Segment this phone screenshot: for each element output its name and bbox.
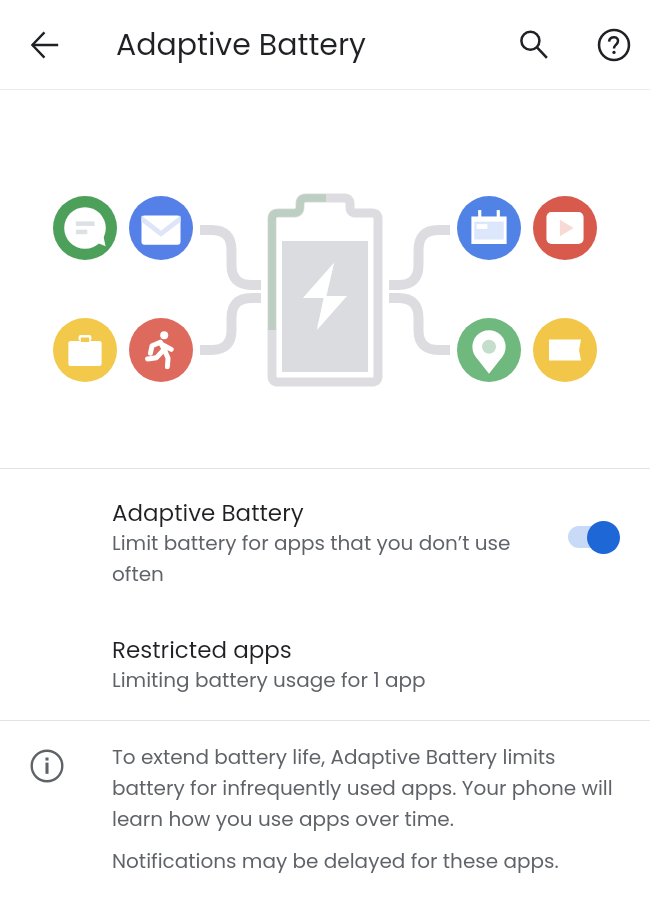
staticText: Limit battery for apps that you don’t us… [112,529,544,588]
button[interactable]: Adaptive Battery [0,469,650,596]
staticText: Adaptive Battery [112,497,304,529]
button[interactable]: Restricted apps [0,634,650,694]
button[interactable]: Back [11,11,79,79]
staticText: Restricted apps [112,634,292,666]
staticText: Limiting battery usage for 1 app [112,666,426,694]
button[interactable]: Search [503,14,565,76]
staticText: Adaptive Battery [116,24,366,66]
staticText: To extend battery life, Adaptive Battery… [112,743,623,833]
staticText: Notifications may be delayed for these a… [112,847,559,875]
button[interactable]: Help [583,14,645,76]
